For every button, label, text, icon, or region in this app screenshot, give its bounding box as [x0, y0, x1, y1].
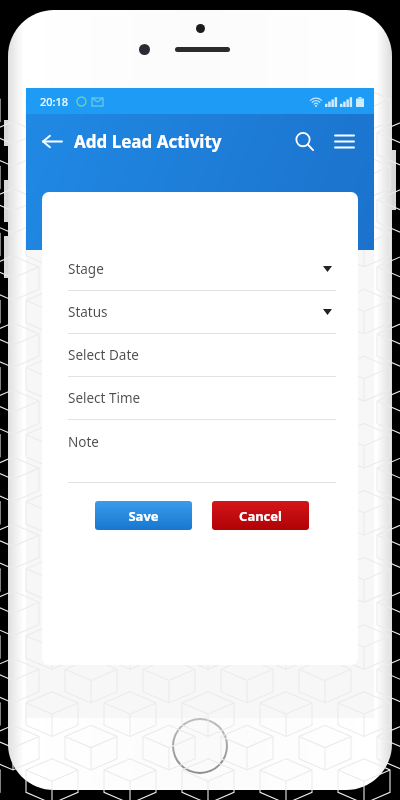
staticText: Cancel — [239, 507, 282, 525]
staticText: Select Time — [68, 389, 141, 407]
staticText: Select Date — [68, 346, 139, 364]
staticText: 20:18 — [40, 94, 69, 109]
staticText: Add Lead Activity — [74, 130, 222, 153]
staticText: Status — [68, 303, 108, 321]
button[interactable]: Stage — [68, 248, 336, 291]
button[interactable]: Back — [34, 123, 70, 159]
button[interactable]: Note — [68, 420, 336, 483]
staticText: Save — [128, 507, 159, 525]
staticText: Note — [68, 433, 99, 451]
button[interactable]: Save — [95, 501, 192, 530]
button[interactable]: Select Date — [68, 334, 336, 377]
button[interactable]: Cancel — [212, 501, 309, 530]
button[interactable]: Menu — [324, 121, 364, 161]
staticText: Stage — [68, 260, 104, 278]
button[interactable]: Status — [68, 291, 336, 334]
button[interactable]: Search — [284, 121, 324, 161]
button[interactable]: Select Time — [68, 377, 336, 420]
